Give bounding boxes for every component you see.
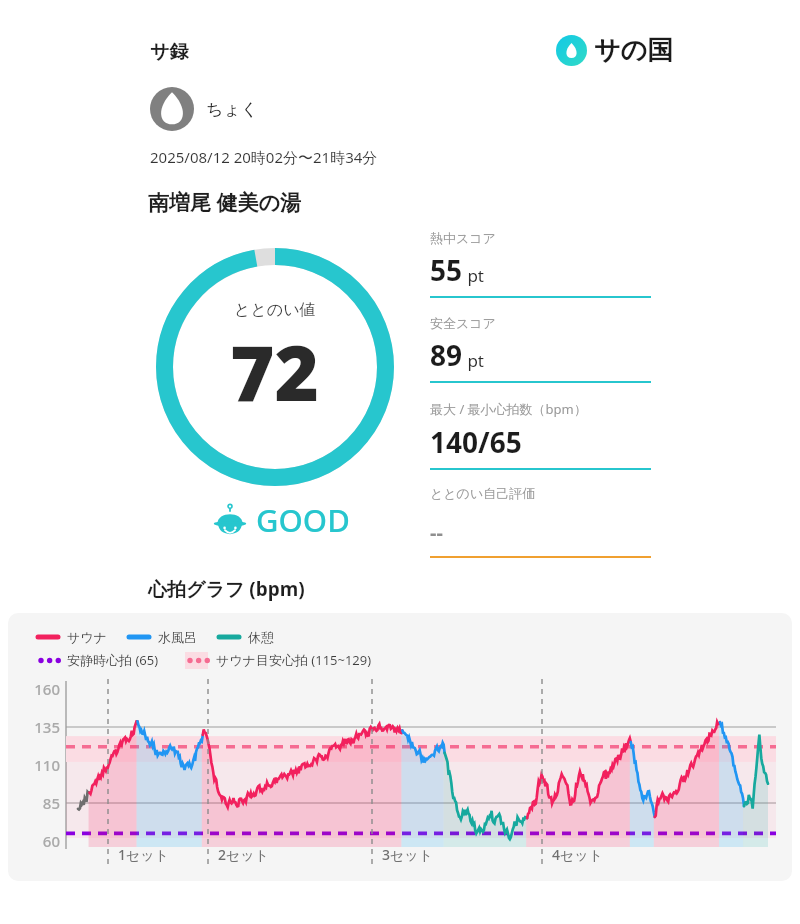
staticText: 休憩 [248,629,274,645]
staticText: 水風呂 [158,629,197,645]
staticText: 熱中スコア [430,230,496,246]
staticText: 135 [24,717,60,737]
staticText: 2セット [218,845,269,864]
staticText: ととのい値 [234,300,316,320]
staticText: サ録 [150,40,189,64]
staticText: 140/65 [430,423,522,461]
button[interactable]: GOOD [212,499,350,541]
staticText: 89 [430,336,463,374]
staticText: 4セット [552,845,603,864]
staticText: 最大 / 最小心拍数（bpm） [430,400,587,418]
button[interactable]: ととのい自己評価 [430,485,651,558]
staticText: pt [463,349,485,372]
staticText: GOOD [256,499,350,541]
staticText: 心拍グラフ (bpm) [148,576,305,602]
staticText: 3セット [382,845,433,864]
button[interactable]: ちょく [150,87,259,131]
staticText: pt [463,264,485,287]
button[interactable]: 安全スコア [430,315,651,383]
staticText: 72 [230,320,320,424]
button[interactable]: サの国 ホーム [556,34,674,67]
staticText: 安静時心拍 (65) [67,651,159,669]
staticText: サウナ目安心拍 (115~129) [216,651,372,669]
staticText: 1セット [118,845,169,864]
staticText: 60 [24,831,60,851]
staticText: 2025/08/12 20時02分〜21時34分 [150,147,378,167]
staticText: 55 [430,251,463,289]
staticText: 85 [24,793,60,813]
staticText: 110 [24,755,60,775]
staticText: 160 [24,679,60,699]
button[interactable]: 熱中スコア [430,230,651,298]
button[interactable]: 最大 / 最小心拍数（bpm） [430,400,651,470]
button[interactable]: サウナ [8,613,792,881]
staticText: サウナ [67,629,107,645]
staticText: 南増尾 健美の湯 [148,188,301,217]
staticText: 安全スコア [430,315,496,331]
staticText: サの国 [594,34,674,67]
staticText: -- [430,519,443,546]
staticText: ちょく [206,99,259,120]
staticText: ととのい自己評価 [430,485,536,501]
